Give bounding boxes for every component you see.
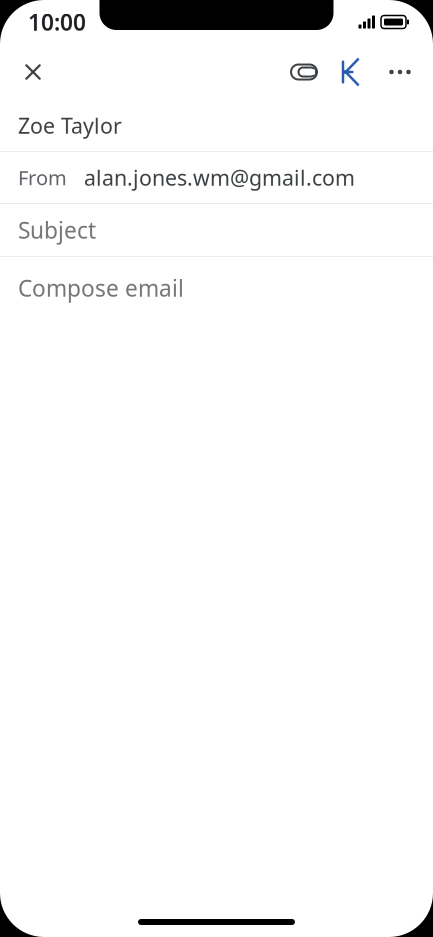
staticText: 10:00: [28, 7, 86, 37]
button[interactable]: Compose email: [0, 257, 433, 919]
staticText: Zoe Taylor: [18, 111, 122, 140]
staticText: alan.jones.wm@gmail.com: [84, 163, 355, 192]
button[interactable]: Send: [328, 48, 376, 96]
staticText: Subject: [18, 215, 96, 245]
button[interactable]: More options: [376, 48, 424, 96]
staticText: Compose email: [18, 273, 184, 303]
button[interactable]: From: [0, 152, 433, 203]
button[interactable]: Zoe Taylor: [0, 100, 433, 151]
button[interactable]: Close: [9, 48, 57, 96]
button[interactable]: Subject: [0, 204, 433, 256]
button[interactable]: Attach file: [280, 48, 328, 96]
staticText: From: [18, 164, 67, 191]
